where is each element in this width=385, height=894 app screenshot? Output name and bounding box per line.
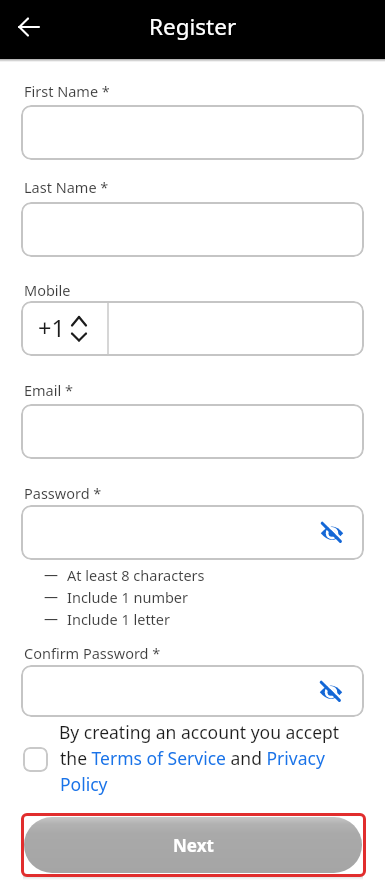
button[interactable] [21,404,364,459]
staticText: Include 1 number [67,587,189,607]
button[interactable] [7,5,51,49]
button[interactable] [21,301,364,356]
staticText: — [44,587,58,606]
staticText: +1 [38,312,65,344]
staticText: Register [149,11,237,42]
staticText: Next [173,834,214,857]
staticText: Email * [24,380,73,400]
button[interactable] [21,202,364,257]
button[interactable] [21,505,364,560]
button[interactable] [21,665,364,717]
button[interactable]: the Terms of Service and Privacy [60,746,325,770]
staticText: Confirm Password * [24,643,161,663]
staticText: Include 1 letter [67,609,171,629]
staticText: — [44,565,58,584]
staticText: By creating an account you accept [59,720,340,744]
button[interactable] [316,677,346,707]
staticText: Last Name * [24,177,109,197]
button[interactable] [23,747,48,772]
staticText: Mobile [24,280,71,300]
button[interactable]: Policy [60,772,108,796]
staticText: — [44,609,58,628]
button[interactable] [317,518,347,548]
button[interactable] [21,105,364,160]
staticText: Password * [24,483,102,503]
staticText: At least 8 characters [67,565,205,585]
button[interactable]: Next [24,817,362,873]
staticText: First Name * [24,81,110,101]
